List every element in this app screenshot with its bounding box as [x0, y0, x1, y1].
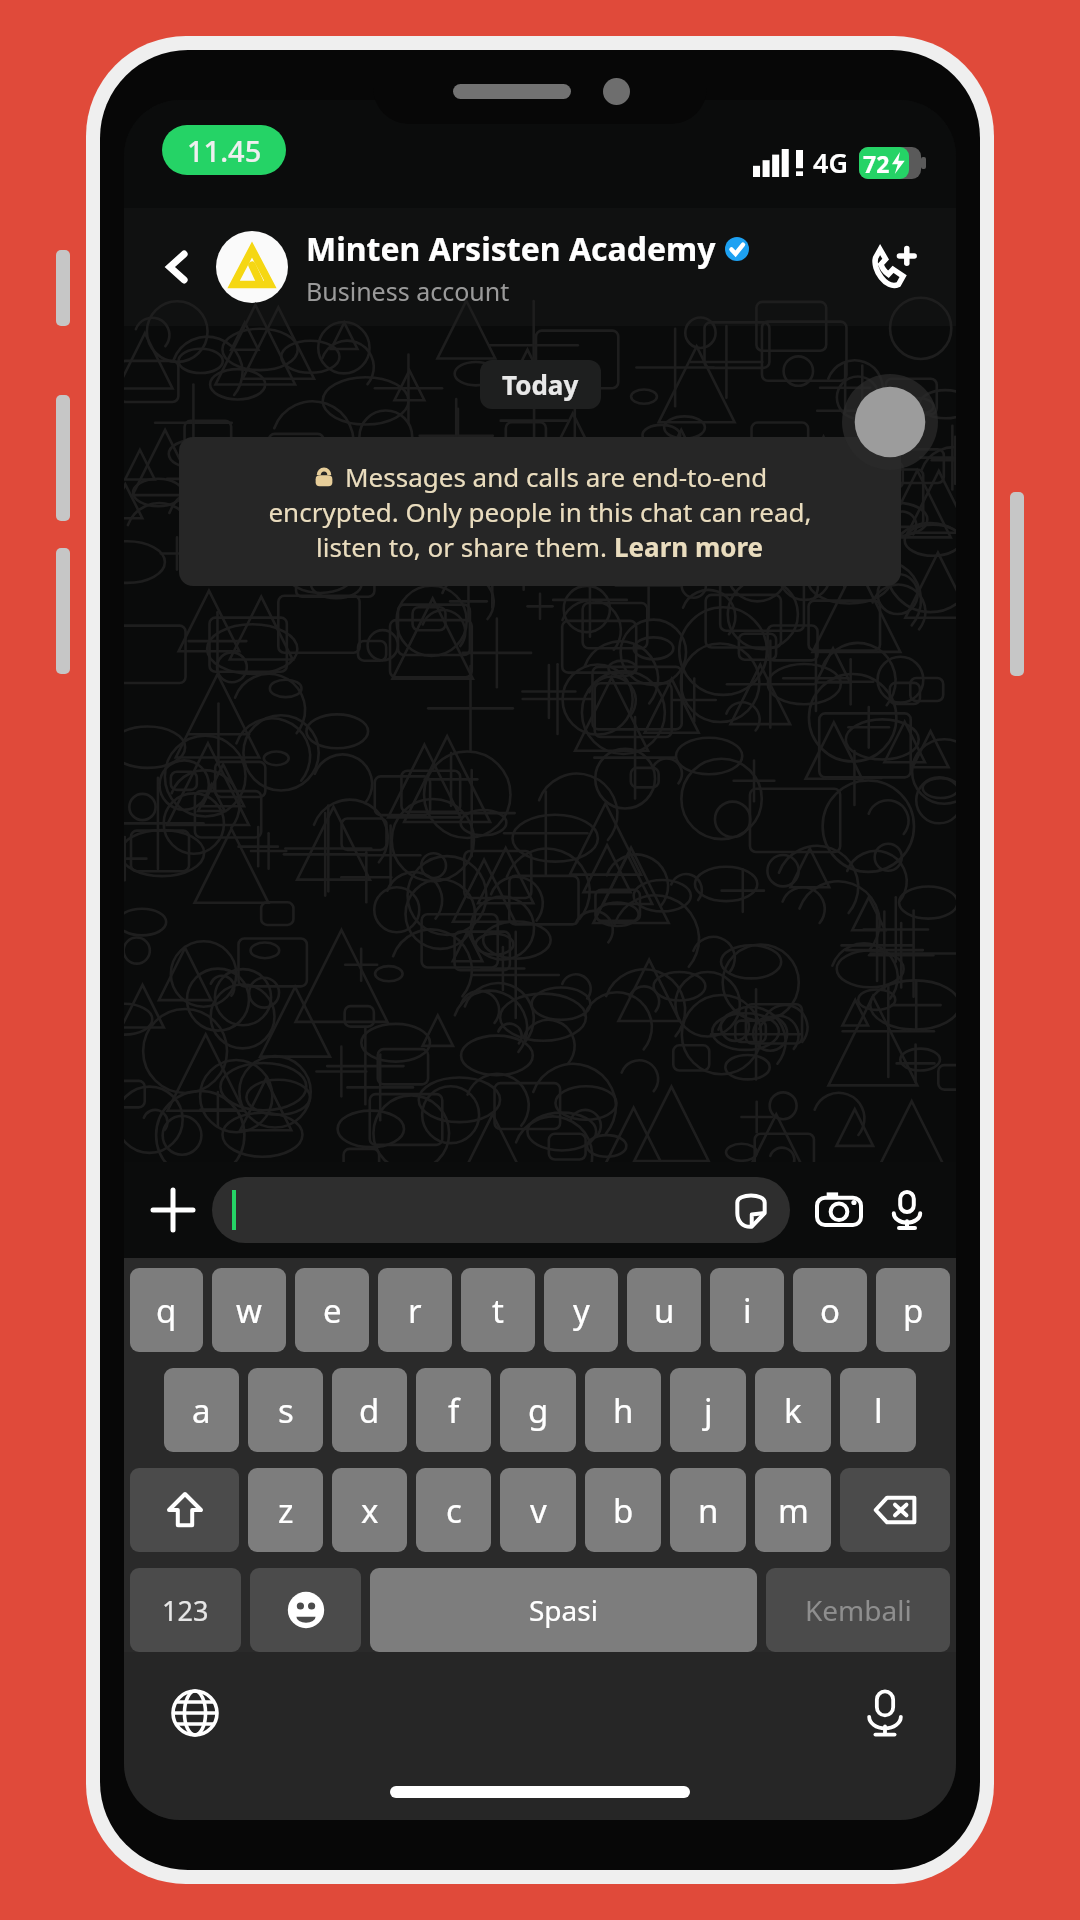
button[interactable]: o [793, 1268, 867, 1352]
button[interactable]: h [585, 1368, 661, 1452]
button[interactable]: Camera [808, 1179, 870, 1241]
button[interactable]: y [544, 1268, 618, 1352]
button[interactable]: q [130, 1268, 203, 1352]
staticText: x [361, 1488, 379, 1533]
button[interactable]: g [500, 1368, 576, 1452]
staticText: s [278, 1388, 294, 1433]
button[interactable]: i [710, 1268, 784, 1352]
staticText: 11.45 [187, 131, 262, 170]
button[interactable]: Emoji [250, 1568, 361, 1652]
staticText: v [530, 1488, 547, 1533]
button[interactable]: p [876, 1268, 950, 1352]
staticText: k [784, 1388, 802, 1433]
button[interactable]: Kembali [766, 1568, 950, 1652]
button[interactable]: a [164, 1368, 239, 1452]
button[interactable]: r [378, 1268, 452, 1352]
staticText: n [698, 1488, 719, 1533]
button[interactable]: Today [502, 367, 579, 402]
button[interactable]: f [416, 1368, 491, 1452]
staticText: 72 [863, 148, 890, 179]
button[interactable]: w [212, 1268, 286, 1352]
staticText: o [820, 1288, 840, 1333]
staticText: m [778, 1488, 809, 1533]
staticText: y [573, 1288, 590, 1333]
button[interactable]: t [461, 1268, 535, 1352]
button[interactable]: Change keyboard [164, 1682, 226, 1744]
button[interactable]: Backspace [840, 1468, 950, 1552]
staticText: 123 [162, 1592, 209, 1629]
staticText: c [446, 1488, 462, 1533]
button[interactable]: Voice input [854, 1682, 916, 1744]
staticText: t [492, 1288, 504, 1333]
button[interactable]: s [248, 1368, 323, 1452]
staticText: l [874, 1388, 883, 1433]
button[interactable]: l [840, 1368, 916, 1452]
button[interactable]: Messages and calls are end-to-end [179, 437, 901, 586]
button[interactable]: x [332, 1468, 407, 1552]
button[interactable]: c [416, 1468, 491, 1552]
staticText: Business account [306, 274, 510, 308]
button[interactable]: Profile photo [216, 231, 288, 303]
button[interactable]: v [500, 1468, 576, 1552]
staticText: Today [502, 367, 579, 402]
staticText: e [323, 1288, 342, 1333]
button[interactable]: d [332, 1368, 407, 1452]
staticText: d [359, 1388, 380, 1433]
button[interactable]: Voice call [856, 230, 930, 304]
button[interactable]: m [755, 1468, 831, 1552]
staticText: j [704, 1388, 713, 1433]
staticText: 4G [813, 144, 849, 181]
button[interactable]: Voice message [876, 1179, 938, 1241]
staticText: listen to, or share them. [316, 529, 614, 564]
button[interactable]: Attach [142, 1179, 204, 1241]
staticText: q [156, 1288, 177, 1333]
staticText: Spasi [529, 1591, 598, 1629]
button[interactable]: z [248, 1468, 323, 1552]
button[interactable]: j [670, 1368, 746, 1452]
button[interactable]: 123 [130, 1568, 241, 1652]
button[interactable]: b [585, 1468, 661, 1552]
staticText: r [408, 1288, 422, 1333]
button[interactable]: Minten Arsisten Academy [306, 227, 856, 308]
staticText: Minten Arsisten Academy [306, 227, 716, 271]
staticText: z [278, 1488, 294, 1533]
staticText: f [448, 1388, 460, 1433]
button[interactable]: e [295, 1268, 369, 1352]
staticText: g [528, 1388, 549, 1433]
staticText: p [903, 1288, 924, 1333]
staticText: Messages and calls are end-to-end [345, 459, 768, 494]
staticText: u [654, 1288, 675, 1333]
button[interactable]: Back [146, 235, 210, 299]
button[interactable]: Shift [130, 1468, 239, 1552]
staticText: b [613, 1488, 634, 1533]
staticText: a [192, 1388, 211, 1433]
staticText: w [236, 1288, 262, 1333]
staticText: Kembali [805, 1591, 912, 1629]
button[interactable]: Spasi [370, 1568, 757, 1652]
staticText: h [613, 1388, 634, 1433]
button[interactable]: Assistive touch [842, 374, 938, 470]
staticText: Learn more [614, 529, 764, 564]
button[interactable]: n [670, 1468, 746, 1552]
button[interactable] [212, 1177, 790, 1243]
button[interactable]: u [627, 1268, 701, 1352]
staticText: encrypted. Only people in this chat can … [268, 494, 812, 529]
staticText: i [743, 1288, 752, 1333]
button[interactable]: k [755, 1368, 831, 1452]
